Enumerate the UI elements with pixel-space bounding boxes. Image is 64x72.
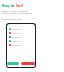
button[interactable]: [21, 62, 35, 65]
button[interactable]: [7, 62, 19, 65]
staticText: commission free: [2, 17, 22, 20]
staticText: stocks, funds, options, commodities & cu…: [2, 9, 33, 15]
staticText: Buy or Sell: [2, 3, 23, 8]
